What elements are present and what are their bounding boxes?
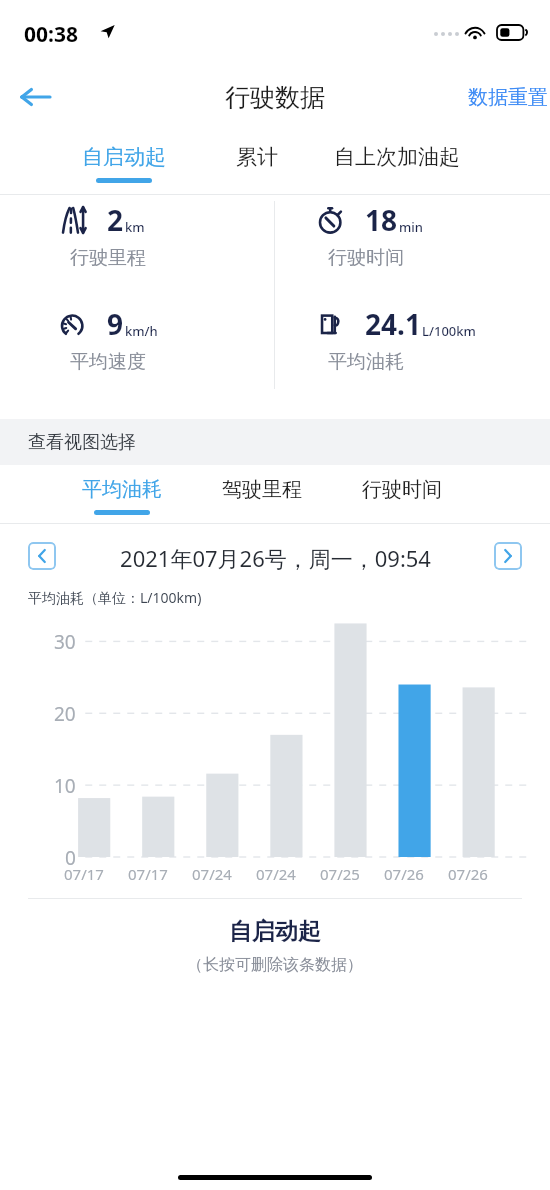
staticText: L/100km [422, 322, 476, 340]
staticText: 累计 [236, 144, 278, 170]
staticText: 9 [107, 305, 124, 343]
button[interactable]: 自上次加油起 [334, 132, 460, 178]
staticText: 24.1 [365, 305, 421, 343]
button[interactable]: Back [8, 70, 62, 124]
button[interactable]: 累计 [236, 132, 278, 178]
staticText: 2 [107, 201, 124, 239]
button[interactable]: 平均油耗 [82, 465, 162, 515]
staticText: 行驶里程 [70, 246, 146, 270]
staticText: 查看视图选择 [28, 431, 136, 454]
staticText: 行驶数据 [225, 82, 325, 113]
button[interactable]: 数据重置 [466, 73, 550, 122]
staticText: 自上次加油起 [334, 144, 460, 170]
button[interactable]: Previous [28, 542, 56, 570]
button[interactable]: 18 [320, 201, 440, 270]
staticText: 07/26 [384, 864, 424, 884]
staticText: km/h [125, 322, 158, 340]
button[interactable]: 9 [62, 305, 182, 374]
staticText: 07/17 [128, 864, 168, 884]
staticText: min [399, 218, 423, 236]
button[interactable]: Next [494, 542, 522, 570]
staticText: km [125, 218, 145, 236]
staticText: 00:38 [24, 20, 78, 49]
button[interactable]: 驾驶里程 [222, 465, 302, 510]
staticText: （长按可删除该条数据） [187, 955, 363, 975]
staticText: 07/26 [448, 864, 488, 884]
staticText: 07/24 [192, 864, 232, 884]
button[interactable]: 行驶时间 [362, 465, 442, 510]
staticText: 30 [54, 629, 76, 655]
staticText: 07/25 [320, 864, 360, 884]
staticText: 平均油耗 [328, 350, 404, 374]
staticText: 行驶时间 [362, 477, 442, 502]
staticText: 行驶时间 [328, 246, 404, 270]
staticText: 数据重置 [468, 85, 548, 110]
staticText: 07/24 [256, 864, 296, 884]
staticText: 平均油耗 [82, 477, 162, 502]
button[interactable]: 自启动起 [82, 132, 166, 183]
button[interactable]: 2 [62, 201, 182, 270]
staticText: 10 [54, 773, 76, 799]
button[interactable]: 24.1 [320, 305, 476, 374]
staticText: 自启动起 [82, 144, 166, 170]
staticText: 18 [365, 201, 398, 239]
staticText: 0 [65, 845, 76, 871]
staticText: 驾驶里程 [222, 477, 302, 502]
staticText: 20 [54, 701, 76, 727]
staticText: 07/17 [64, 864, 104, 884]
staticText: 自启动起 [229, 917, 321, 946]
staticText: 平均油耗（单位：L/100km) [28, 588, 202, 607]
staticText: 平均速度 [70, 350, 146, 374]
staticText: 2021年07月26号，周一，09:54 [120, 543, 431, 573]
